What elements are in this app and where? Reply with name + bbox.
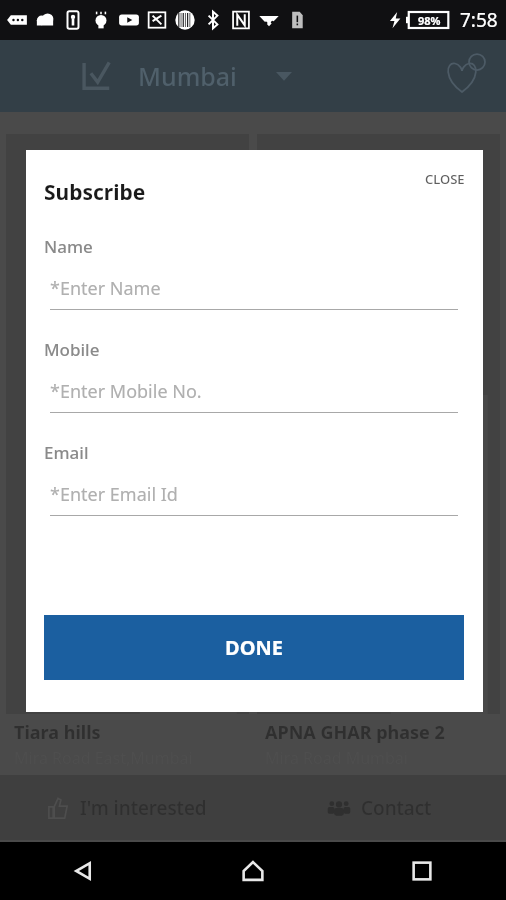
- staticText: *Enter Mobile No.: [50, 379, 202, 404]
- staticText: *Enter Email Id: [50, 482, 178, 507]
- staticText: 98%: [418, 13, 441, 28]
- other: App logo: [80, 59, 114, 93]
- button[interactable]: Recents: [337, 842, 506, 900]
- button[interactable]: Back: [0, 842, 168, 900]
- button[interactable]: Email: [26, 441, 483, 516]
- staticText: Mumbai: [138, 59, 237, 93]
- staticText: Mobile: [44, 338, 100, 361]
- staticText: *Enter Name: [50, 276, 161, 301]
- staticText: I'm interested: [80, 795, 207, 821]
- button[interactable]: Mumbai: [138, 59, 237, 93]
- staticText: Contact: [361, 795, 432, 821]
- button[interactable]: APNA GHAR phase 2: [257, 130, 500, 775]
- staticText: 7:58: [460, 7, 498, 33]
- button[interactable]: DONE: [44, 615, 464, 680]
- button[interactable]: Change city: [271, 63, 297, 89]
- staticText: Email: [44, 441, 89, 464]
- staticText: APNA GHAR phase 2: [265, 720, 445, 745]
- button[interactable]: Name: [26, 235, 483, 310]
- button[interactable]: Tiara hills: [6, 130, 249, 775]
- button[interactable]: Home: [168, 842, 337, 900]
- button[interactable]: Mobile: [26, 338, 483, 413]
- staticText: DONE: [225, 634, 283, 661]
- button[interactable]: Favourites: [438, 48, 494, 104]
- staticText: Name: [44, 235, 93, 258]
- staticText: Subscribe: [44, 178, 146, 207]
- staticText: Tiara hills: [14, 720, 101, 745]
- staticText: CLOSE: [425, 170, 465, 188]
- button[interactable]: CLOSE: [415, 162, 475, 196]
